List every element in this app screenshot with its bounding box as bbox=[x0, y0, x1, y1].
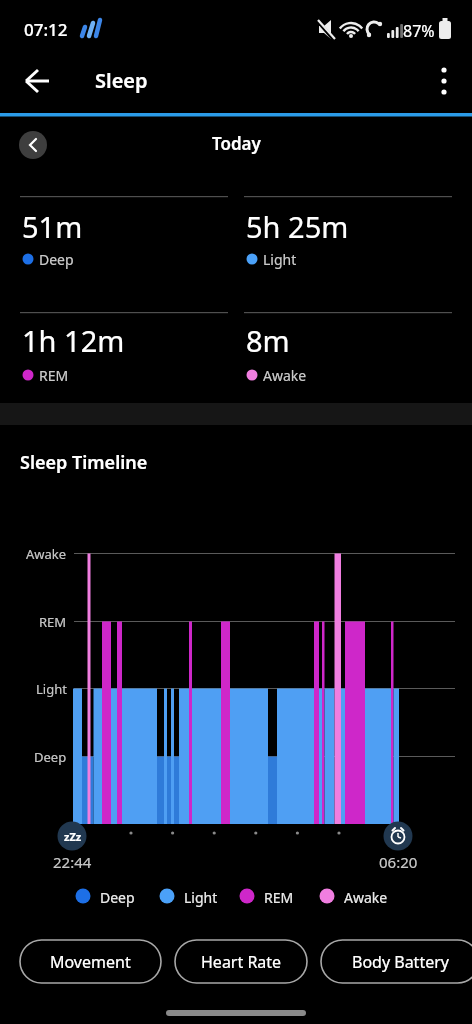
staticText: Body Battery bbox=[352, 951, 449, 973]
staticText: 1h 12m bbox=[22, 321, 125, 360]
staticText: Light bbox=[36, 680, 67, 697]
staticText: 87% bbox=[403, 20, 435, 42]
staticText: 22:44 bbox=[53, 852, 92, 872]
staticText: Deep bbox=[34, 748, 67, 765]
button[interactable] bbox=[424, 61, 464, 101]
staticText: Heart Rate bbox=[201, 951, 282, 973]
button[interactable] bbox=[16, 61, 56, 101]
staticText: Light bbox=[184, 888, 218, 907]
button[interactable]: Body Battery bbox=[321, 940, 472, 983]
staticText: Light bbox=[263, 250, 297, 269]
staticText: zZz bbox=[64, 829, 82, 844]
button[interactable] bbox=[57, 821, 87, 851]
staticText: 06:20 bbox=[379, 852, 418, 872]
staticText: Awake bbox=[344, 888, 388, 907]
staticText: REM bbox=[39, 366, 69, 385]
staticText: 07:12 bbox=[24, 18, 68, 41]
button[interactable] bbox=[19, 131, 47, 159]
button[interactable]: Heart Rate bbox=[175, 940, 307, 983]
staticText: REM bbox=[39, 613, 67, 630]
staticText: REM bbox=[264, 888, 294, 907]
staticText: Movement bbox=[50, 951, 131, 973]
button[interactable] bbox=[383, 821, 413, 851]
staticText: Deep bbox=[100, 888, 135, 907]
staticText: Sleep Timeline bbox=[20, 450, 148, 475]
staticText: Awake bbox=[263, 366, 307, 385]
staticText: Deep bbox=[39, 250, 74, 269]
staticText: Awake bbox=[26, 545, 67, 562]
staticText: Today bbox=[212, 132, 261, 155]
staticText: Sleep bbox=[95, 67, 148, 94]
button[interactable]: Movement bbox=[20, 940, 161, 983]
staticText: 8m bbox=[246, 321, 290, 360]
staticText: 51m bbox=[22, 207, 83, 246]
staticText: 5h 25m bbox=[246, 207, 349, 246]
